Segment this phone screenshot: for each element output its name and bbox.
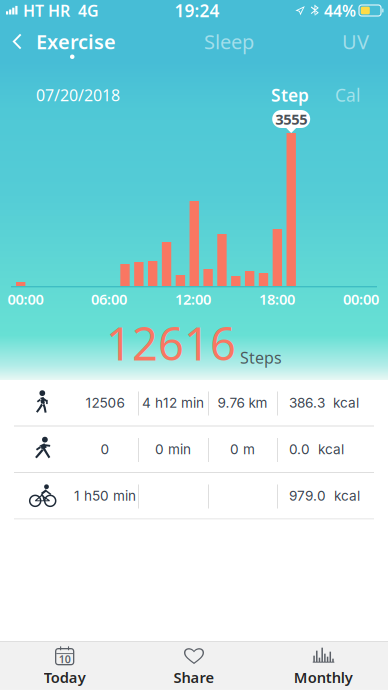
staticText: 00:00 [7,289,43,309]
staticText: 18:00 [259,289,295,309]
staticText: Cal [335,83,360,106]
staticText: 07/20/2018 [36,84,120,106]
staticText: UV [342,28,369,55]
staticText: Monthly [294,668,353,687]
staticText: Steps [240,347,282,368]
staticText: 0 min [155,441,191,457]
button[interactable]: Cal [313,83,388,106]
staticText: Sleep [204,28,254,55]
button[interactable]: 10 [0,642,129,690]
staticText: 19:24 [174,0,219,22]
staticText: Share [173,668,214,687]
staticText: 4 h12 min [142,394,204,411]
staticText: 9.76 km [217,394,267,411]
staticText: 12616 [106,313,236,373]
button[interactable]: Share [129,642,259,690]
staticText: Exercise [36,28,116,55]
button[interactable]: Monthly [259,642,388,690]
button[interactable]: Exercise [34,25,116,57]
staticText: 44% [324,0,356,21]
button[interactable]: Back [0,25,34,57]
staticText: 386.3 kcal [289,394,359,411]
staticText: 12506 [85,394,124,411]
staticText: 4G [78,0,99,21]
staticText: 979.0 kcal [289,487,360,504]
button[interactable]: Sleep [204,25,254,57]
staticText: 1 h50 min [74,487,136,504]
staticText: 0.0 kcal [289,441,344,457]
staticText: Step [271,83,309,106]
button[interactable]: Step [267,83,313,106]
button[interactable]: UV [342,25,388,57]
staticText: Today [44,668,86,687]
staticText: 10 [59,652,71,666]
staticText: 0 [100,441,109,457]
staticText: HT HR [23,0,70,21]
staticText: 06:00 [91,289,127,309]
staticText: 3555 [275,109,307,129]
staticText: 00:00 [343,289,379,309]
staticText: 0 m [230,441,255,457]
staticText: 12:00 [175,289,211,309]
